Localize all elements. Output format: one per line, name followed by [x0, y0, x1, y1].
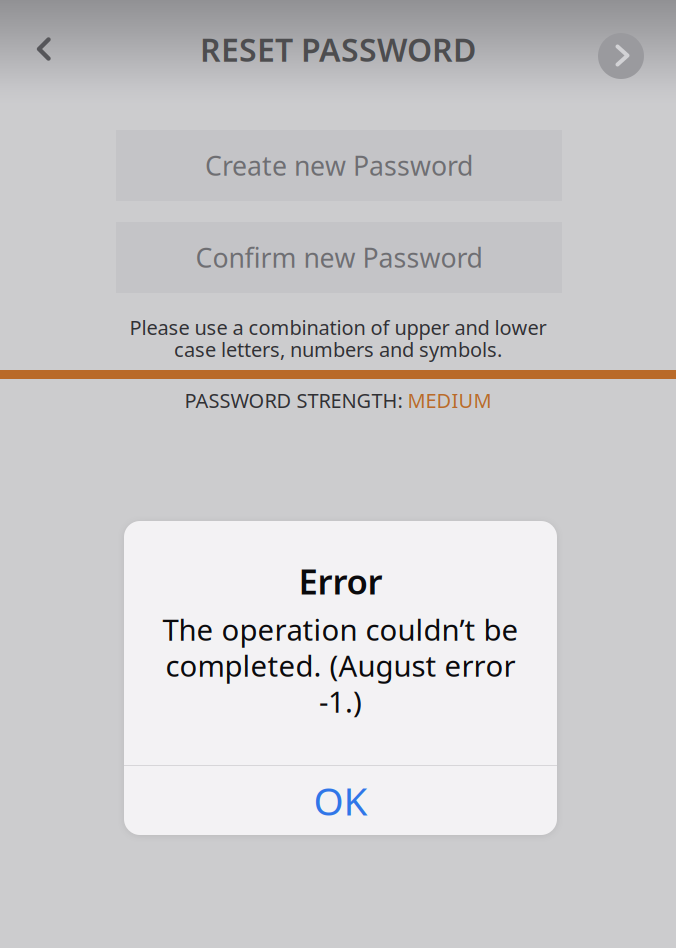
staticText: Confirm new Password: [195, 240, 482, 275]
button[interactable]: Confirm new Password: [116, 222, 562, 293]
button[interactable]: Back: [14, 19, 74, 79]
staticText: -1.): [319, 682, 362, 721]
staticText: completed. (August error: [165, 646, 515, 685]
staticText: Error: [298, 558, 382, 604]
staticText: case letters, numbers and symbols.: [174, 336, 502, 363]
staticText: Please use a combination of upper and lo…: [129, 314, 546, 341]
staticText: RESET PASSWORD: [200, 28, 476, 70]
staticText: OK: [313, 775, 367, 826]
button[interactable]: Next: [587, 22, 655, 90]
staticText: The operation couldn’t be: [162, 610, 518, 649]
button[interactable]: OK: [124, 766, 557, 835]
staticText: MEDIUM: [407, 387, 491, 414]
button[interactable]: Create new Password: [116, 130, 562, 201]
staticText: PASSWORD STRENGTH:: [184, 387, 407, 414]
staticText: Create new Password: [205, 148, 473, 183]
